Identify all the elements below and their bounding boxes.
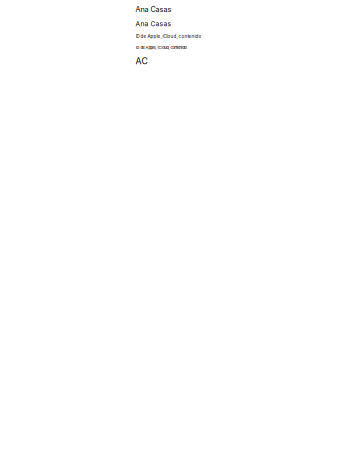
staticText: ID de Apple, iCloud, contenido — [135, 34, 201, 39]
staticText: ID de Apple, iCloud, contenido — [135, 45, 186, 50]
staticText: Ana Casas — [135, 20, 171, 28]
staticText: Ana Casas — [135, 5, 171, 14]
staticText: AC — [135, 56, 147, 66]
